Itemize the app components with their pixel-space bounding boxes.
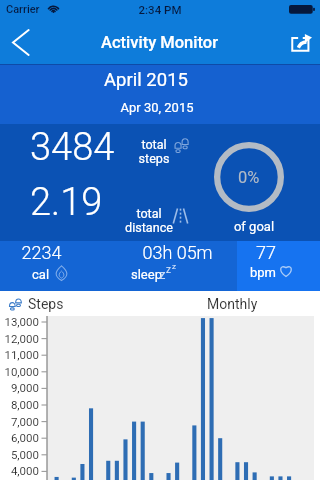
button[interactable]: April 2015 xyxy=(0,64,320,124)
staticText: 5,000 xyxy=(0,448,39,461)
staticText: 12,000 xyxy=(0,332,39,345)
staticText: 9,000 xyxy=(0,381,39,394)
staticText: Apr 30, 2015 xyxy=(0,100,317,115)
staticText: z xyxy=(166,264,171,276)
staticText: total distance xyxy=(124,206,174,235)
staticText: Carrier xyxy=(6,3,40,16)
staticText: 13,000 xyxy=(0,315,39,328)
button[interactable]: 77 xyxy=(237,241,320,291)
button[interactable]: 2.19 xyxy=(0,182,320,241)
staticText: 7,000 xyxy=(0,415,39,428)
staticText: cal xyxy=(32,267,50,282)
staticText: Steps xyxy=(28,296,64,312)
staticText: 6,000 xyxy=(0,431,39,444)
button[interactable]: 2234 xyxy=(0,241,118,291)
staticText: Activity Monitor xyxy=(101,33,219,52)
staticText: of goal xyxy=(219,219,289,234)
staticText: sleep xyxy=(131,267,162,282)
staticText: 77 xyxy=(243,242,289,263)
staticText: 2234 xyxy=(16,242,67,263)
staticText: 4,000 xyxy=(0,464,39,477)
button[interactable]: Share xyxy=(280,20,320,64)
staticText: Monthly xyxy=(207,296,258,312)
staticText: 0% xyxy=(238,168,260,187)
button[interactable]: 0% xyxy=(214,142,284,212)
staticText: total steps xyxy=(129,137,179,166)
staticText: z xyxy=(159,267,166,282)
staticText: bpm xyxy=(250,265,276,280)
staticText: 8,000 xyxy=(0,398,39,411)
staticText: 2.19 xyxy=(30,180,103,225)
staticText: 2:34 PM xyxy=(0,3,320,16)
staticText: 10,000 xyxy=(0,365,39,378)
staticText: 3484 xyxy=(30,125,115,170)
staticText: April 2015 xyxy=(0,69,306,91)
staticText: z xyxy=(172,262,176,271)
button[interactable]: Back xyxy=(0,20,40,64)
button[interactable]: 03h 05m xyxy=(118,241,237,291)
staticText: 11,000 xyxy=(0,348,39,361)
staticText: 03h 05m xyxy=(132,242,223,263)
button[interactable]: 3484 xyxy=(0,124,320,182)
